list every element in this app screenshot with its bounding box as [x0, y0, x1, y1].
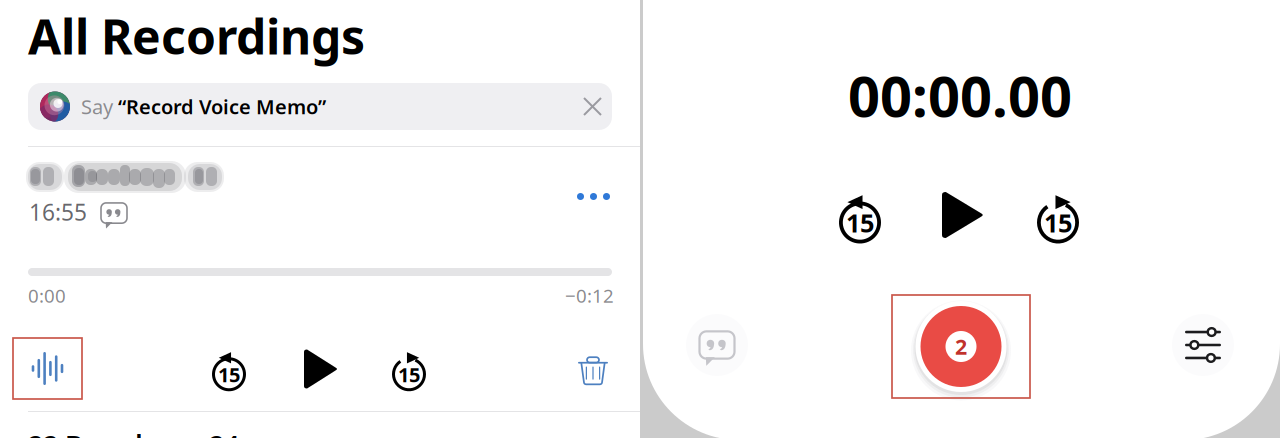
button[interactable]: Transcript — [687, 315, 747, 375]
button[interactable]: Record — [892, 295, 1030, 398]
button[interactable]: Play — [296, 344, 346, 394]
button[interactable]: Skip forward 15 seconds — [1029, 187, 1087, 245]
staticText: 16:55 — [29, 197, 87, 227]
staticText: −0:12 — [565, 283, 614, 308]
staticText: All Recordings — [28, 4, 365, 68]
button[interactable]: Skip back 15 seconds — [831, 187, 889, 245]
staticText: 15 — [218, 361, 240, 388]
button[interactable]: Skip back 15 seconds — [204, 344, 254, 394]
button[interactable]: Play — [934, 186, 992, 244]
staticText: 22 Broadway, 24 — [28, 427, 239, 438]
button[interactable]: Playback settings — [1173, 315, 1233, 375]
staticText: “Record Voice Memo” — [118, 93, 326, 120]
staticText: Say — [81, 93, 118, 120]
staticText: 2 — [955, 332, 967, 361]
staticText: 15 — [398, 361, 420, 388]
staticText: 00:00.00 — [848, 58, 1072, 132]
button[interactable]: Edit recording — [13, 338, 82, 399]
staticText: 15 — [1044, 206, 1072, 239]
staticText: 15 — [846, 206, 874, 239]
button[interactable]: Skip forward 15 seconds — [384, 344, 434, 394]
button[interactable]: Say — [28, 83, 612, 130]
button[interactable]: Delete — [568, 343, 618, 393]
staticText: 0:00 — [28, 283, 66, 308]
button[interactable]: 16:55 — [28, 160, 640, 246]
